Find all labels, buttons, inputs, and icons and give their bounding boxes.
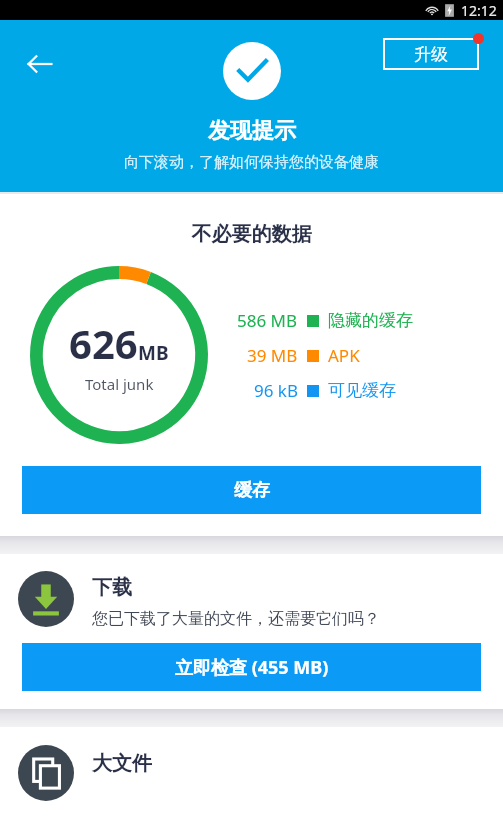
staticText: 626	[69, 316, 138, 370]
staticText: 升级	[414, 44, 448, 65]
staticText: 下载	[92, 575, 132, 600]
button[interactable]: 立即检查 (455 MB)	[22, 643, 481, 691]
button[interactable]: 升级	[383, 38, 479, 70]
staticText: 向下滚动，了解如何保持您的设备健康	[124, 153, 379, 172]
staticText: 您已下载了大量的文件，还需要它们吗？	[92, 609, 380, 629]
staticText: 可见缓存	[328, 380, 396, 401]
staticText: 12:12	[461, 1, 497, 20]
staticText: Total junk	[85, 374, 154, 394]
staticText: APK	[328, 344, 360, 367]
staticText: 缓存	[234, 479, 270, 502]
staticText: 586 MB	[237, 309, 298, 332]
staticText: 大文件	[92, 751, 152, 776]
staticText: 96 kB	[254, 379, 298, 402]
staticText: 39 MB	[247, 344, 298, 367]
button[interactable]: Back	[14, 38, 66, 90]
staticText: 发现提示	[208, 117, 296, 145]
staticText: 立即检查 (455 MB)	[175, 655, 329, 680]
staticText: MB	[138, 340, 169, 366]
staticText: 不必要的数据	[0, 222, 503, 247]
other: Downloads	[18, 571, 74, 627]
other: Big files	[18, 745, 74, 801]
staticText: 隐藏的缓存	[328, 310, 413, 331]
button[interactable]: 缓存	[22, 466, 481, 514]
